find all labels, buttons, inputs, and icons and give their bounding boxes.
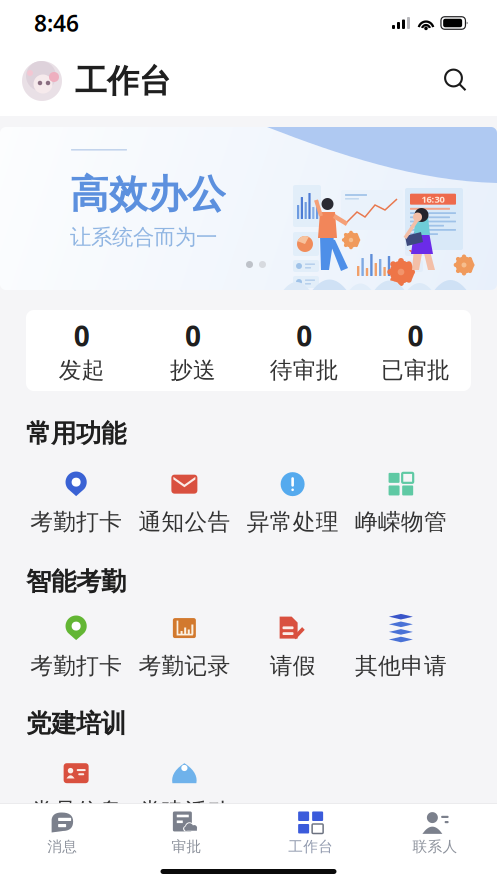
staticText: 其他申请 <box>355 652 447 680</box>
staticText: 8:46 <box>34 8 79 38</box>
staticText: 已审批 <box>381 356 450 384</box>
staticText: 考勤打卡 <box>30 508 122 536</box>
button[interactable]: 0 <box>248 317 360 384</box>
staticText: 工作台 <box>288 837 333 855</box>
staticText: 请假 <box>270 652 316 680</box>
button[interactable]: 消息 <box>0 802 124 859</box>
staticText: 考勤打卡 <box>30 652 122 680</box>
staticText: 0 <box>296 317 312 354</box>
staticText: 审批 <box>171 837 201 855</box>
button[interactable]: 峥嵘物管 <box>347 469 455 538</box>
button[interactable]: 考勤打卡 <box>22 469 130 538</box>
staticText: 让系统合而为一 <box>70 224 217 250</box>
staticText: 0 <box>74 317 90 354</box>
staticText: 待审批 <box>270 356 339 384</box>
staticText: 联系人 <box>412 837 457 855</box>
staticText: 异常处理 <box>247 508 339 536</box>
staticText: 抄送 <box>170 356 216 384</box>
staticText: 发起 <box>59 356 105 384</box>
button[interactable]: 请假 <box>238 613 347 682</box>
staticText: 0 <box>185 317 201 354</box>
staticText: 高效办公 <box>70 171 226 218</box>
button[interactable]: 0 <box>26 317 137 384</box>
staticText: 智能考勤 <box>26 566 126 597</box>
button[interactable]: 工作台 <box>248 802 373 859</box>
button[interactable]: 考勤记录 <box>130 613 238 682</box>
staticText: 常用功能 <box>26 418 126 449</box>
staticText: 消息 <box>47 837 77 855</box>
staticText: 考勤记录 <box>138 652 230 680</box>
button[interactable]: 联系人 <box>373 802 497 859</box>
staticText: 0 <box>407 317 423 354</box>
staticText: 16:30 <box>421 193 444 205</box>
button[interactable]: 0 <box>360 317 471 384</box>
staticText <box>290 796 296 826</box>
button[interactable]: 其他申请 <box>347 613 455 682</box>
staticText: 党建培训 <box>26 708 126 739</box>
button[interactable]: 党建活动 <box>130 758 238 827</box>
button[interactable]: 考勤打卡 <box>22 613 130 682</box>
staticText <box>398 796 404 826</box>
button[interactable]: 党员信息 <box>22 758 130 827</box>
staticText: 工作台 <box>75 61 171 101</box>
button[interactable]: Search <box>441 66 471 96</box>
button[interactable]: Profile <box>22 61 62 101</box>
staticText: 峥嵘物管 <box>355 508 447 536</box>
button[interactable]: 审批 <box>124 802 248 859</box>
button[interactable]: 0 <box>137 317 248 384</box>
staticText: 通知公告 <box>138 508 230 536</box>
button[interactable]: 异常处理 <box>238 469 347 538</box>
staticText: 党建活动 <box>138 797 230 825</box>
button[interactable]: 通知公告 <box>130 469 238 538</box>
staticText: 党员信息 <box>30 797 122 825</box>
